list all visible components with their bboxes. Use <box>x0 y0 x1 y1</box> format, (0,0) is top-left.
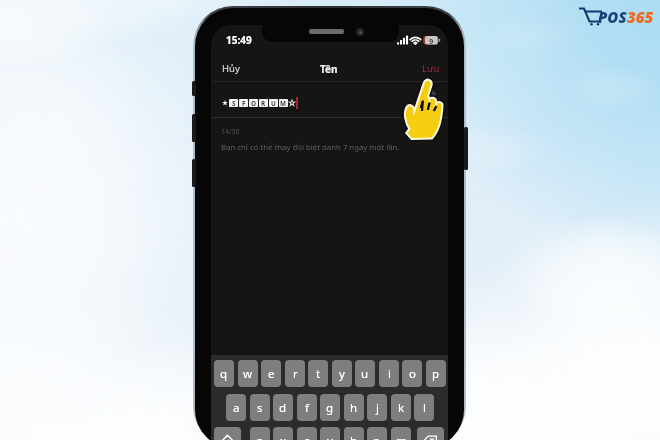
staticText: c <box>304 433 310 440</box>
button[interactable]: Volume down <box>192 159 196 187</box>
button[interactable]: Hủy <box>217 59 245 78</box>
staticText: i <box>388 366 391 382</box>
button[interactable]: r <box>285 360 305 387</box>
staticText: t <box>316 366 321 382</box>
staticText: a <box>233 400 240 416</box>
staticText: 365 <box>627 7 654 27</box>
button[interactable]: z <box>250 427 270 440</box>
staticText: Tên <box>320 62 338 76</box>
button[interactable]: u <box>355 360 375 387</box>
button[interactable]: d <box>273 394 293 421</box>
button[interactable]: k <box>391 394 411 421</box>
staticText: 14/30 <box>221 127 240 137</box>
staticText: h <box>350 400 358 416</box>
button[interactable]: p <box>426 360 446 387</box>
button[interactable]: v <box>320 427 340 440</box>
button[interactable]: b <box>344 427 364 440</box>
staticText: M <box>280 99 287 107</box>
staticText: l <box>423 400 426 416</box>
button[interactable]: Key <box>417 427 444 440</box>
button[interactable]: s <box>250 394 270 421</box>
staticText: R <box>261 99 266 107</box>
staticText: v <box>327 433 333 440</box>
staticText: x <box>280 433 287 440</box>
button[interactable]: w <box>238 360 258 387</box>
button[interactable]: f <box>297 394 317 421</box>
staticText: z <box>257 433 263 440</box>
button[interactable]: Power <box>464 127 468 170</box>
staticText: u <box>361 366 369 382</box>
staticText: q <box>220 366 228 382</box>
button[interactable]: l <box>414 394 434 421</box>
staticText: S <box>232 99 236 107</box>
staticText: Lưu <box>422 62 440 75</box>
button[interactable]: a <box>226 394 246 421</box>
button[interactable]: y <box>332 360 352 387</box>
staticText: e <box>268 366 275 382</box>
button[interactable]: g <box>320 394 340 421</box>
button[interactable]: j <box>367 394 387 421</box>
button[interactable]: Key <box>214 427 241 440</box>
other: POS365 logo <box>578 4 656 30</box>
button[interactable]: c <box>297 427 317 440</box>
staticText: w <box>243 366 253 382</box>
button[interactable]: n <box>367 427 387 440</box>
staticText: o <box>409 366 416 382</box>
button[interactable]: x <box>273 427 293 440</box>
button[interactable]: e <box>261 360 281 387</box>
other: Tap here <box>399 76 447 146</box>
staticText: k <box>398 400 405 416</box>
staticText: b <box>350 433 358 440</box>
staticText: g <box>326 400 334 416</box>
button[interactable]: Volume up <box>192 114 196 142</box>
staticText: p <box>432 366 440 382</box>
staticText: d <box>279 400 287 416</box>
staticText: j <box>376 400 379 416</box>
staticText: O <box>251 99 257 107</box>
staticText: y <box>339 366 345 382</box>
staticText: s <box>257 400 263 416</box>
button[interactable]: i <box>379 360 399 387</box>
button[interactable]: Silent switch <box>192 81 196 96</box>
button[interactable]: m <box>391 427 411 440</box>
staticText: 15:49 <box>226 33 252 47</box>
staticText: f <box>305 400 309 416</box>
staticText: F <box>242 99 246 107</box>
staticText: 9 <box>429 36 434 46</box>
staticText: U <box>271 99 276 107</box>
staticText: POS <box>598 7 627 27</box>
button[interactable]: q <box>214 360 234 387</box>
button[interactable]: Lưu <box>417 59 445 78</box>
button[interactable]: h <box>344 394 364 421</box>
staticText: Bạn chỉ có thể thay đổi biệt danh 7 ngày… <box>221 142 400 153</box>
button[interactable]: t <box>308 360 328 387</box>
button[interactable]: o <box>402 360 422 387</box>
staticText: Hủy <box>222 62 240 75</box>
staticText: r <box>293 366 298 382</box>
staticText: m <box>396 433 407 440</box>
staticText: n <box>373 433 381 440</box>
